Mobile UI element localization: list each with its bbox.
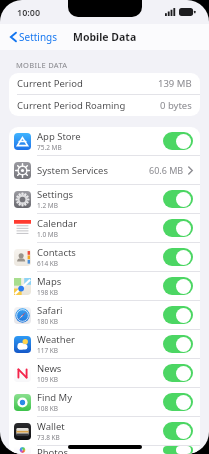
button[interactable]: Toggle on (163, 132, 193, 150)
button[interactable]: Calendar (9, 214, 200, 243)
staticText: 0 bytes (160, 99, 192, 112)
staticText: 60.6 MB (149, 164, 184, 176)
staticText: Contacts (37, 246, 76, 259)
button[interactable]: Toggle on (163, 306, 193, 324)
button[interactable]: Toggle on (163, 446, 193, 454)
button[interactable]: Settings (9, 185, 200, 214)
button[interactable]: Toggle on (163, 219, 193, 237)
staticText: System Services (37, 164, 149, 177)
button[interactable]: Weather (9, 330, 200, 359)
button[interactable]: Toggle on (163, 393, 193, 411)
button[interactable]: Photos (9, 446, 200, 454)
staticText: 1.2 MB (37, 201, 58, 210)
button[interactable]: Find My (9, 388, 200, 417)
button[interactable]: Toggle on (163, 277, 193, 295)
staticText: 198 KB (37, 288, 59, 297)
staticText: Safari (37, 304, 63, 317)
button[interactable]: Toggle on (163, 335, 193, 353)
staticText: 180 KB (37, 317, 59, 326)
button[interactable]: Maps (9, 272, 200, 301)
staticText: Settings (19, 30, 58, 44)
button[interactable]: Current Period Roaming (9, 95, 200, 116)
staticText: 117 KB (37, 346, 59, 355)
staticText: Calendar (37, 217, 78, 230)
button[interactable]: Toggle on (163, 364, 193, 382)
staticText: Settings (37, 188, 74, 201)
staticText: News (37, 362, 62, 375)
button[interactable]: Wallet (9, 417, 200, 446)
staticText: Maps (37, 275, 62, 288)
button[interactable]: App Store (9, 127, 200, 156)
button[interactable]: Current Period (9, 73, 200, 95)
staticText: 139 MB (158, 77, 192, 90)
button[interactable]: Contacts (9, 243, 200, 272)
staticText: App Store (37, 130, 81, 143)
button[interactable]: Toggle on (163, 422, 193, 440)
button[interactable]: Toggle on (163, 190, 193, 208)
staticText: 73.8 KB (37, 433, 60, 442)
staticText: MOBILE DATA (16, 60, 68, 70)
staticText: Mobile Data (73, 30, 137, 44)
button[interactable]: System Services (9, 156, 200, 185)
button[interactable]: Toggle on (163, 248, 193, 266)
button[interactable]: News (9, 359, 200, 388)
staticText: Current Period Roaming (17, 99, 160, 112)
button[interactable]: Safari (9, 301, 200, 330)
staticText: 75.2 MB (37, 143, 62, 152)
staticText: 108 KB (37, 404, 59, 413)
staticText: Weather (37, 333, 75, 346)
staticText: 1.0 MB (37, 230, 58, 239)
button[interactable]: Settings (8, 26, 60, 48)
staticText: Current Period (17, 77, 158, 90)
staticText: 10:00 (17, 6, 41, 18)
staticText: 614 KB (37, 259, 59, 268)
staticText: Find My (37, 391, 73, 404)
staticText: 109 KB (37, 375, 59, 384)
staticText: Wallet (37, 420, 65, 433)
staticText: Photos (37, 446, 69, 454)
